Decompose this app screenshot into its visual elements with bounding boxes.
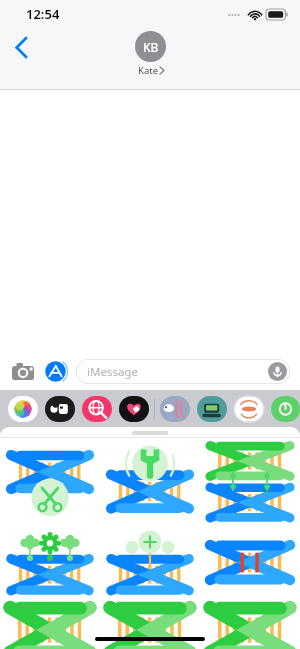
button[interactable]: DNA sticker (0, 599, 100, 649)
button[interactable]: DNA sticker (200, 438, 300, 523)
button[interactable]: Badge stickers (234, 396, 264, 422)
button[interactable]: More apps (271, 396, 300, 422)
button[interactable]: iMessage (76, 359, 290, 384)
button[interactable]: KB (135, 31, 166, 77)
button[interactable]: Camera (10, 358, 36, 384)
button[interactable]: DNA stickers (160, 396, 190, 422)
button[interactable]: DNA sticker (200, 599, 300, 649)
button[interactable]: Dictate (268, 362, 287, 381)
button[interactable]: DNA sticker (200, 523, 300, 599)
staticText: KB (143, 39, 159, 55)
staticText: 12:54 (26, 5, 60, 23)
button[interactable]: App Store (43, 359, 68, 384)
button[interactable]: Photos (8, 396, 38, 422)
button[interactable]: Stickers (119, 396, 149, 422)
button[interactable]: DNA sticker (100, 523, 200, 599)
staticText: iMessage (87, 364, 138, 380)
button[interactable]: DNA sticker (100, 438, 200, 523)
button[interactable]: Back (4, 30, 38, 64)
button[interactable]: Darkroom (197, 396, 227, 422)
button[interactable]: DNA sticker (0, 523, 100, 599)
staticText: Kate (138, 64, 158, 77)
button[interactable]: Image search (82, 396, 112, 422)
button[interactable]: Apple Pay (45, 396, 75, 422)
button[interactable]: DNA sticker (100, 599, 200, 649)
button[interactable]: DNA sticker (0, 438, 100, 523)
